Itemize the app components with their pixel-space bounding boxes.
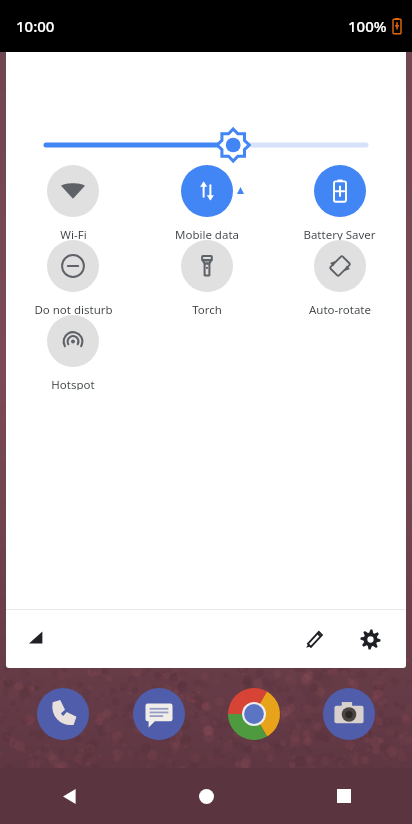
button[interactable]: Brightness [6,52,406,165]
staticText: Mobile data [175,227,239,240]
button[interactable]: Home [138,768,275,824]
button[interactable]: Recents [275,768,412,824]
staticText: 10:00 [16,16,55,36]
button[interactable]: Battery Saver [273,165,406,240]
button[interactable]: Signal [18,619,58,659]
staticText: Torch [192,302,222,315]
staticText: 100% [348,16,387,36]
staticText: Do not disturb [34,302,113,315]
button[interactable]: Torch [140,240,273,315]
button[interactable]: Hotspot [6,315,140,390]
button[interactable]: Settings [348,617,392,661]
button[interactable]: Wi-Fi [6,165,140,240]
staticText: Battery Saver [303,227,376,240]
button[interactable]: Mobile data [140,165,273,240]
staticText: Hotspot [51,377,95,390]
staticText: Wi-Fi [60,227,87,240]
button[interactable]: Edit [292,617,336,661]
button[interactable]: Phone [37,688,89,740]
staticText: Auto-rotate [309,302,371,315]
button[interactable]: Back [0,768,138,824]
button[interactable]: Camera [323,688,375,740]
button[interactable]: Do not disturb [6,240,140,315]
button[interactable]: Chrome [228,688,280,740]
button[interactable]: Messages [133,688,185,740]
button[interactable]: Auto-rotate [273,240,406,315]
